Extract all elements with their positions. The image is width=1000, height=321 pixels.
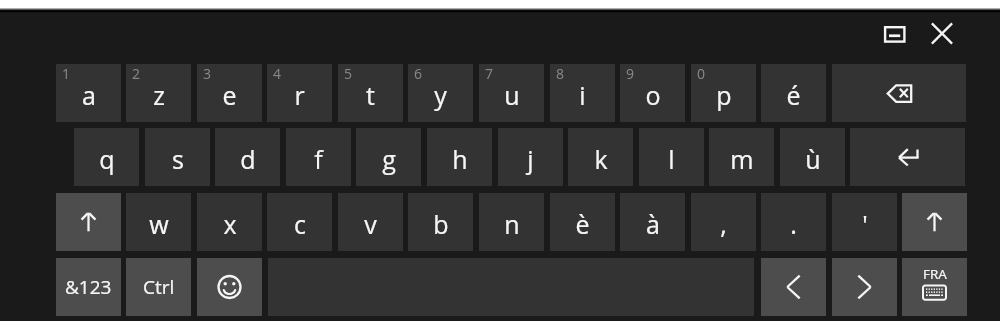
button[interactable]: c bbox=[267, 193, 332, 251]
button[interactable]: Change language, FRA bbox=[902, 258, 967, 316]
staticText: 5 bbox=[344, 64, 353, 83]
button[interactable]: m bbox=[709, 128, 774, 186]
button[interactable]: 3 bbox=[197, 64, 262, 122]
button[interactable]: Close keyboard bbox=[924, 16, 960, 51]
staticText: w bbox=[149, 207, 169, 241]
button[interactable]: d bbox=[215, 128, 280, 186]
button[interactable]: 1 bbox=[56, 64, 121, 122]
button[interactable]: k bbox=[568, 128, 633, 186]
button[interactable]: Backspace bbox=[832, 64, 966, 122]
button[interactable]: Dock keyboard bbox=[876, 16, 913, 51]
staticText: k bbox=[594, 142, 608, 176]
staticText: 9 bbox=[626, 64, 635, 83]
staticText: ù bbox=[805, 142, 821, 176]
button[interactable]: 6 bbox=[408, 64, 473, 122]
staticText: o bbox=[645, 78, 661, 112]
button[interactable]: , bbox=[691, 193, 756, 251]
staticText: é bbox=[786, 78, 801, 112]
button[interactable]: 5 bbox=[338, 64, 403, 122]
staticText: s bbox=[172, 142, 184, 176]
button[interactable]: 4 bbox=[267, 64, 332, 122]
button[interactable]: &123 bbox=[56, 258, 121, 316]
staticText: ' bbox=[862, 207, 868, 241]
button[interactable]: Shift bbox=[902, 193, 967, 251]
staticText: m bbox=[730, 142, 754, 176]
button[interactable]: ' bbox=[832, 193, 897, 251]
staticText: 6 bbox=[414, 64, 423, 83]
button[interactable]: 9 bbox=[620, 64, 685, 122]
button[interactable]: à bbox=[620, 193, 685, 251]
button[interactable]: Shift bbox=[56, 193, 121, 251]
button[interactable]: é bbox=[761, 64, 826, 122]
staticText: 0 bbox=[697, 64, 706, 83]
button[interactable]: è bbox=[550, 193, 615, 251]
staticText: c bbox=[294, 207, 306, 241]
button[interactable]: f bbox=[286, 128, 351, 186]
staticText: f bbox=[314, 142, 323, 176]
staticText: 7 bbox=[485, 64, 494, 83]
staticText: l bbox=[668, 142, 675, 176]
button[interactable]: n bbox=[479, 193, 544, 251]
staticText: &123 bbox=[65, 274, 112, 300]
staticText: è bbox=[575, 207, 590, 241]
staticText: t bbox=[366, 78, 375, 112]
button[interactable]: 8 bbox=[550, 64, 615, 122]
button[interactable]: Ctrl bbox=[126, 258, 191, 316]
button[interactable]: w bbox=[126, 193, 191, 251]
button[interactable]: j bbox=[498, 128, 563, 186]
button[interactable]: Emoji bbox=[197, 258, 262, 316]
button[interactable]: . bbox=[761, 193, 826, 251]
button[interactable]: Enter bbox=[850, 128, 965, 186]
staticText: g bbox=[382, 142, 396, 176]
button[interactable]: s bbox=[145, 128, 210, 186]
button[interactable]: x bbox=[197, 193, 262, 251]
button[interactable]: b bbox=[408, 193, 473, 251]
button[interactable]: 2 bbox=[126, 64, 191, 122]
staticText: . bbox=[790, 207, 797, 241]
staticText: e bbox=[222, 78, 237, 112]
staticText: q bbox=[99, 142, 115, 176]
button[interactable]: Move cursor left bbox=[761, 258, 826, 316]
button[interactable]: Move cursor right bbox=[832, 258, 897, 316]
button[interactable]: v bbox=[338, 193, 403, 251]
staticText: 1 bbox=[62, 64, 71, 83]
button[interactable]: ù bbox=[780, 128, 845, 186]
button[interactable]: l bbox=[639, 128, 704, 186]
staticText: u bbox=[504, 78, 520, 112]
staticText: j bbox=[527, 142, 534, 176]
staticText: a bbox=[82, 78, 96, 112]
staticText: 3 bbox=[203, 64, 212, 83]
staticText: 4 bbox=[273, 64, 282, 83]
staticText: z bbox=[153, 78, 165, 112]
staticText: y bbox=[434, 78, 447, 112]
staticText: Ctrl bbox=[143, 274, 175, 300]
staticText: 8 bbox=[556, 64, 565, 83]
staticText: x bbox=[223, 207, 237, 241]
staticText: p bbox=[716, 78, 732, 112]
staticText: r bbox=[294, 78, 305, 112]
staticText: FRA bbox=[923, 265, 947, 283]
staticText: d bbox=[240, 142, 256, 176]
staticText: n bbox=[504, 207, 520, 241]
button[interactable]: 0 bbox=[691, 64, 756, 122]
staticText: 2 bbox=[132, 64, 141, 83]
staticText: , bbox=[720, 207, 727, 241]
button[interactable]: q bbox=[74, 128, 139, 186]
button[interactable]: g bbox=[356, 128, 421, 186]
staticText: i bbox=[579, 78, 586, 112]
staticText: b bbox=[433, 207, 449, 241]
button[interactable]: h bbox=[427, 128, 492, 186]
button[interactable]: 7 bbox=[479, 64, 544, 122]
staticText: v bbox=[364, 207, 377, 241]
staticText: à bbox=[646, 207, 660, 241]
staticText: h bbox=[452, 142, 468, 176]
